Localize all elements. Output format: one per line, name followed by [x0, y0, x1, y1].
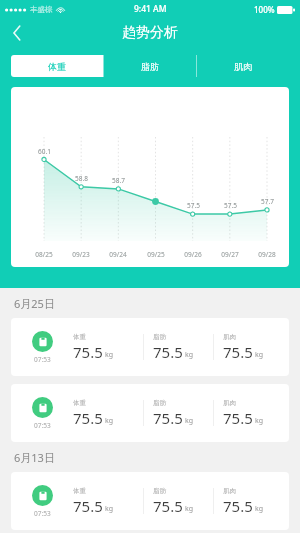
staticText: 07:53	[34, 355, 51, 364]
staticText: 09/26	[184, 250, 202, 259]
staticText: 肌肉	[223, 487, 236, 495]
staticText: 75.5	[223, 496, 253, 516]
staticText: 脂肪	[153, 487, 166, 495]
staticText: 75.5	[73, 342, 103, 362]
button[interactable]: Back	[0, 18, 34, 48]
staticText: kg	[185, 416, 194, 426]
staticText: 75.5	[73, 496, 103, 516]
staticText: 75.5	[223, 342, 253, 362]
staticText: 75.5	[153, 496, 183, 516]
staticText: 75.5	[153, 342, 183, 362]
staticText: kg	[255, 416, 264, 426]
staticText: 57.7	[261, 197, 274, 206]
staticText: 57.5	[187, 201, 200, 210]
staticText: 75.5	[73, 408, 103, 428]
staticText: 100%	[254, 4, 275, 15]
staticText: 75.5	[223, 408, 253, 428]
staticText: kg	[255, 350, 264, 360]
staticText: 肌肉	[223, 399, 236, 407]
staticText: 体重	[73, 487, 86, 495]
button[interactable]: 07:53	[11, 472, 289, 530]
staticText: 肌肉	[223, 333, 236, 341]
button[interactable]: 肌肉	[197, 55, 289, 77]
staticText: 脂肪	[153, 399, 166, 407]
staticText: kg	[105, 416, 114, 426]
staticText: 09/27	[221, 250, 239, 259]
staticText: kg	[105, 504, 114, 514]
staticText: 09/23	[72, 250, 90, 259]
staticText: 体重	[48, 61, 66, 72]
staticText: 丰盛棕	[30, 5, 53, 14]
staticText: 58.8	[75, 174, 88, 183]
staticText: 75.5	[153, 408, 183, 428]
staticText: 6月25日	[14, 296, 55, 311]
button[interactable]: 体重	[11, 55, 103, 77]
staticText: 09/24	[109, 250, 127, 259]
button[interactable]: 07:53	[11, 318, 289, 376]
staticText: 09/28	[258, 250, 276, 259]
staticText: 体重	[73, 399, 86, 407]
staticText: kg	[185, 350, 194, 360]
staticText: 脂肪	[141, 61, 159, 72]
staticText: 6月13日	[14, 450, 55, 465]
staticText: 58.7	[112, 176, 125, 185]
staticText: 体重	[73, 333, 86, 341]
button[interactable]: 07:53	[11, 384, 289, 442]
staticText: 08/25	[35, 250, 53, 259]
staticText: 09/25	[147, 250, 165, 259]
staticText: kg	[255, 504, 264, 514]
staticText: 9:41 AM	[134, 3, 167, 15]
staticText: kg	[185, 504, 194, 514]
staticText: 脂肪	[153, 333, 166, 341]
staticText: kg	[105, 350, 114, 360]
staticText: 60.1	[38, 147, 51, 156]
staticText: 肌肉	[234, 61, 252, 72]
button[interactable]: 脂肪	[104, 55, 196, 77]
staticText: 57.5	[224, 201, 237, 210]
staticText: 07:53	[34, 421, 51, 430]
staticText: 趋势分析	[122, 24, 178, 42]
staticText: 07:53	[34, 509, 51, 518]
